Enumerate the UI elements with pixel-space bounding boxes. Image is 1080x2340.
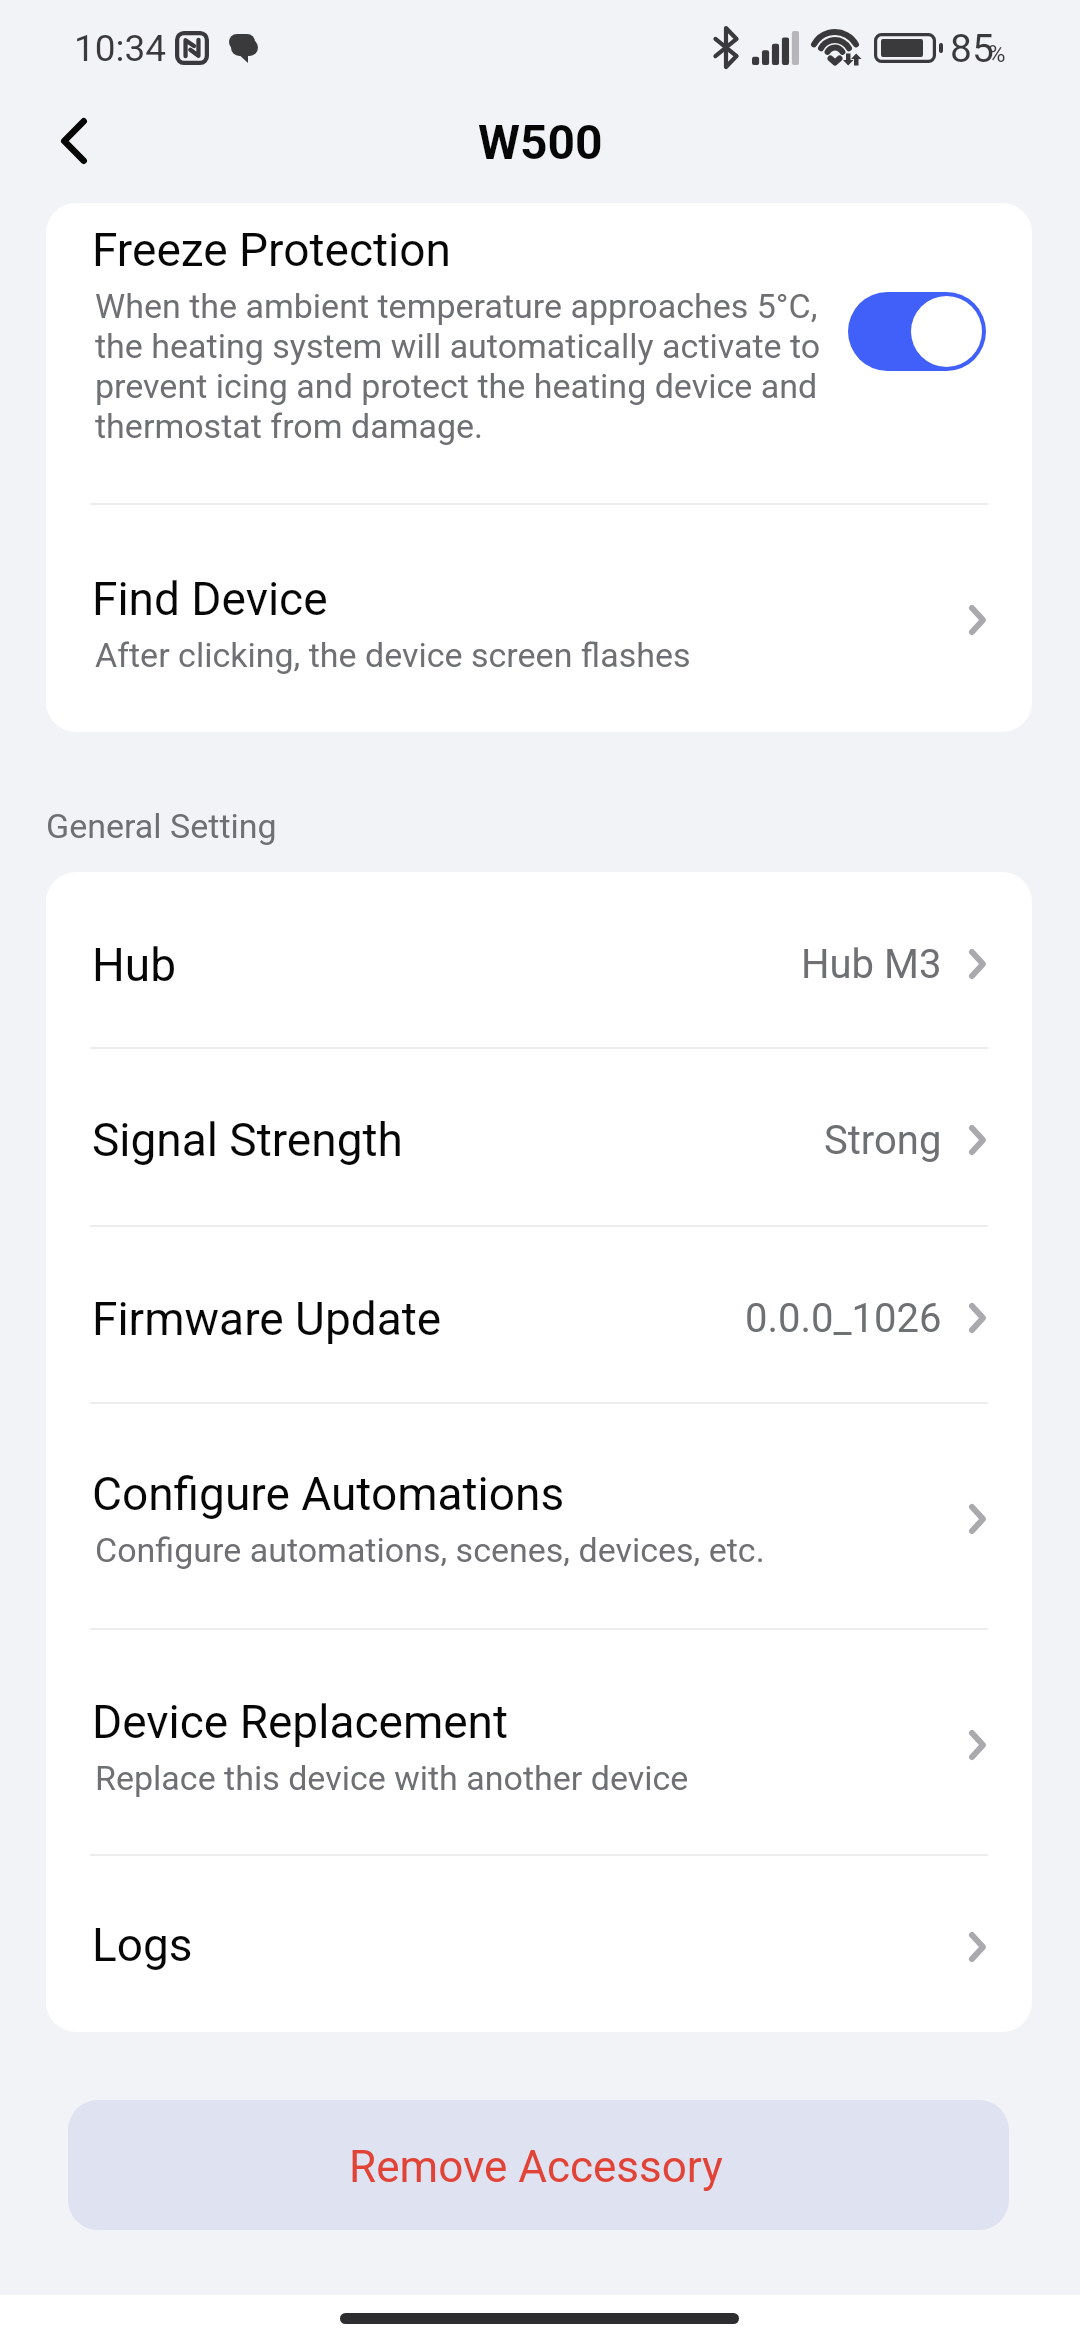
button[interactable]: Logs (46, 1854, 1032, 2032)
button[interactable]: Firmware Update (46, 1225, 1032, 1402)
staticText: Strong (824, 1117, 942, 1164)
button[interactable]: Device Replacement (46, 1628, 1032, 1854)
staticText: 0.0.0_1026 (745, 1295, 942, 1342)
staticText: Freeze Protection (92, 223, 451, 277)
button[interactable]: Freeze Protection (46, 203, 1032, 503)
staticText: 85 (950, 26, 994, 72)
staticText: After clicking, the device screen flashe… (95, 635, 691, 675)
button[interactable]: Freeze Protection switch (848, 292, 986, 371)
button[interactable]: Signal Strength (46, 1047, 1032, 1225)
staticText: Find Device (92, 572, 328, 626)
staticText: General Setting (46, 806, 277, 846)
staticText: 10:34 (74, 27, 167, 70)
button[interactable]: Remove Accessory (68, 2100, 1009, 2230)
button[interactable]: Configure Automations (46, 1402, 1032, 1628)
staticText: Firmware Update (92, 1292, 442, 1346)
staticText: Replace this device with another device (95, 1758, 689, 1798)
button[interactable]: Find Device (46, 505, 1032, 732)
staticText: Logs (92, 1918, 193, 1972)
staticText: W500 (478, 114, 603, 170)
staticText: Device Replacement (92, 1695, 509, 1749)
staticText: Configure Automations (92, 1467, 565, 1521)
button[interactable]: Hub (46, 872, 1032, 1047)
staticText: Remove Accessory (349, 2141, 723, 2193)
staticText: When the ambient temperature approaches … (95, 286, 831, 446)
staticText: Configure automations, scenes, devices, … (95, 1530, 765, 1570)
staticText: % (988, 40, 1006, 68)
staticText: Hub (92, 938, 177, 992)
staticText: Signal Strength (92, 1113, 403, 1167)
button[interactable]: Back (34, 101, 114, 181)
staticText: Hub M3 (801, 941, 942, 988)
